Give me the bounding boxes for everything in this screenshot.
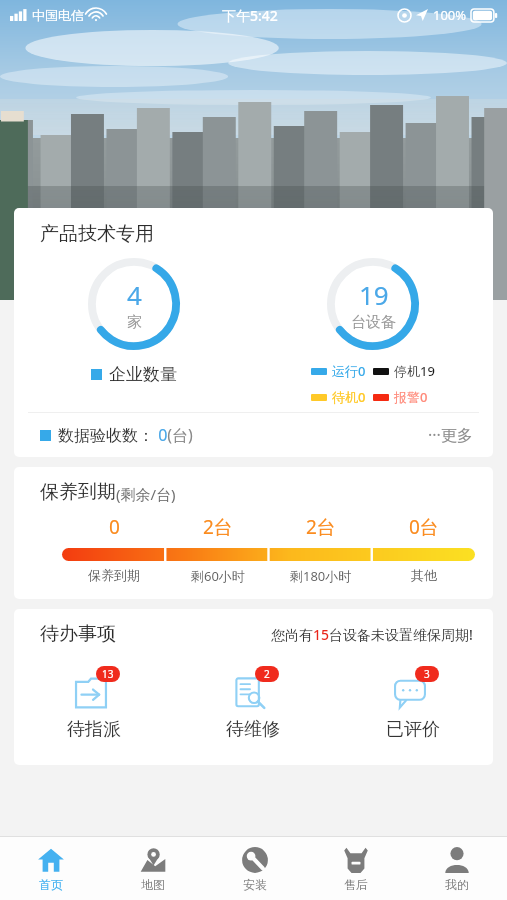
- button[interactable]: 我的: [406, 837, 507, 900]
- staticText: 下午5:42: [222, 6, 278, 25]
- staticText: 100%: [433, 6, 467, 24]
- staticText: 2台: [306, 514, 336, 540]
- staticText: 数据验收数： 0(台): [58, 424, 193, 446]
- staticText: ···更多: [428, 424, 473, 446]
- staticText: 2台: [203, 514, 233, 540]
- staticText: 保养到期: [40, 480, 116, 504]
- staticText: 待维修: [226, 718, 280, 741]
- button[interactable]: 待办事项: [14, 609, 493, 765]
- staticText: 13: [102, 667, 114, 681]
- staticText: 0台: [409, 514, 439, 540]
- staticText: 报警0: [394, 388, 428, 406]
- button[interactable]: 首页: [0, 837, 102, 900]
- staticText: 3: [424, 667, 430, 681]
- button[interactable]: 数据验收数： 0(台): [14, 413, 493, 457]
- other: 待维修: [233, 676, 267, 710]
- staticText: 保养到期: [88, 567, 140, 583]
- staticText: 剩180小时: [290, 567, 352, 585]
- staticText: 家: [127, 313, 142, 332]
- staticText: 停机19: [394, 362, 435, 380]
- staticText: 待指派: [67, 718, 121, 741]
- button[interactable]: 地图: [102, 837, 204, 900]
- staticText: 剩60小时: [191, 567, 245, 585]
- staticText: 4: [127, 277, 142, 312]
- other: 已评价: [393, 676, 427, 710]
- staticText: 地图: [141, 877, 165, 892]
- staticText: 其他: [411, 567, 437, 583]
- staticText: 首页: [39, 877, 63, 892]
- staticText: 2: [264, 667, 270, 681]
- button[interactable]: 售后: [305, 837, 406, 900]
- staticText: 我的: [445, 877, 469, 892]
- button[interactable]: 产品技术专用: [14, 208, 493, 457]
- staticText: 19: [359, 277, 389, 312]
- staticText: 待办事项: [40, 622, 116, 646]
- button[interactable]: 保养到期: [14, 467, 493, 599]
- button[interactable]: 待维修: [173, 662, 333, 745]
- staticText: 运行0: [332, 362, 366, 380]
- staticText: 产品技术专用: [40, 222, 154, 246]
- staticText: 企业数量: [109, 364, 177, 385]
- staticText: 台设备: [351, 313, 396, 332]
- button[interactable]: 安装: [204, 837, 305, 900]
- button[interactable]: 已评价: [333, 662, 493, 745]
- staticText: 中国电信: [32, 7, 84, 23]
- button[interactable]: 待指派: [14, 662, 173, 745]
- other: 待指派: [74, 676, 108, 710]
- staticText: 售后: [344, 877, 368, 892]
- staticText: 您尚有15台设备未设置维保周期!: [271, 625, 473, 644]
- staticText: 已评价: [386, 718, 440, 741]
- staticText: 安装: [243, 877, 267, 892]
- staticText: (剩余/台): [116, 484, 176, 504]
- staticText: 待机0: [332, 388, 366, 406]
- staticText: 0: [109, 514, 120, 540]
